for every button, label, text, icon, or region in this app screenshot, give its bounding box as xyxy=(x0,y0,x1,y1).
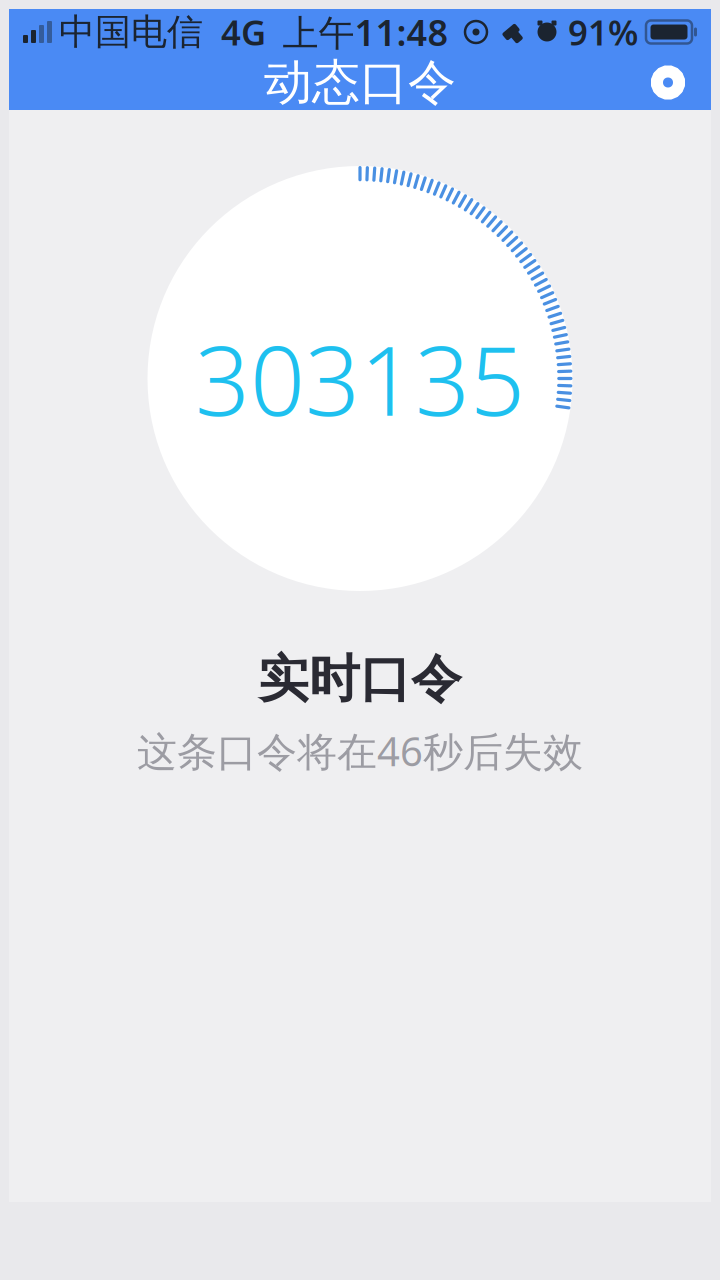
staticText: 4G xyxy=(221,9,266,55)
staticText: 中国电信 xyxy=(59,10,203,54)
staticText: 303135 xyxy=(195,315,525,442)
staticText: 91% xyxy=(568,9,638,55)
staticText: 上午11:48 xyxy=(282,8,448,56)
staticText: 动态口令 xyxy=(264,53,456,112)
staticText: 这条口令将在46秒后失效 xyxy=(137,724,583,777)
staticText: 实时口令 xyxy=(258,648,462,710)
button[interactable]: 设置 xyxy=(637,55,699,110)
